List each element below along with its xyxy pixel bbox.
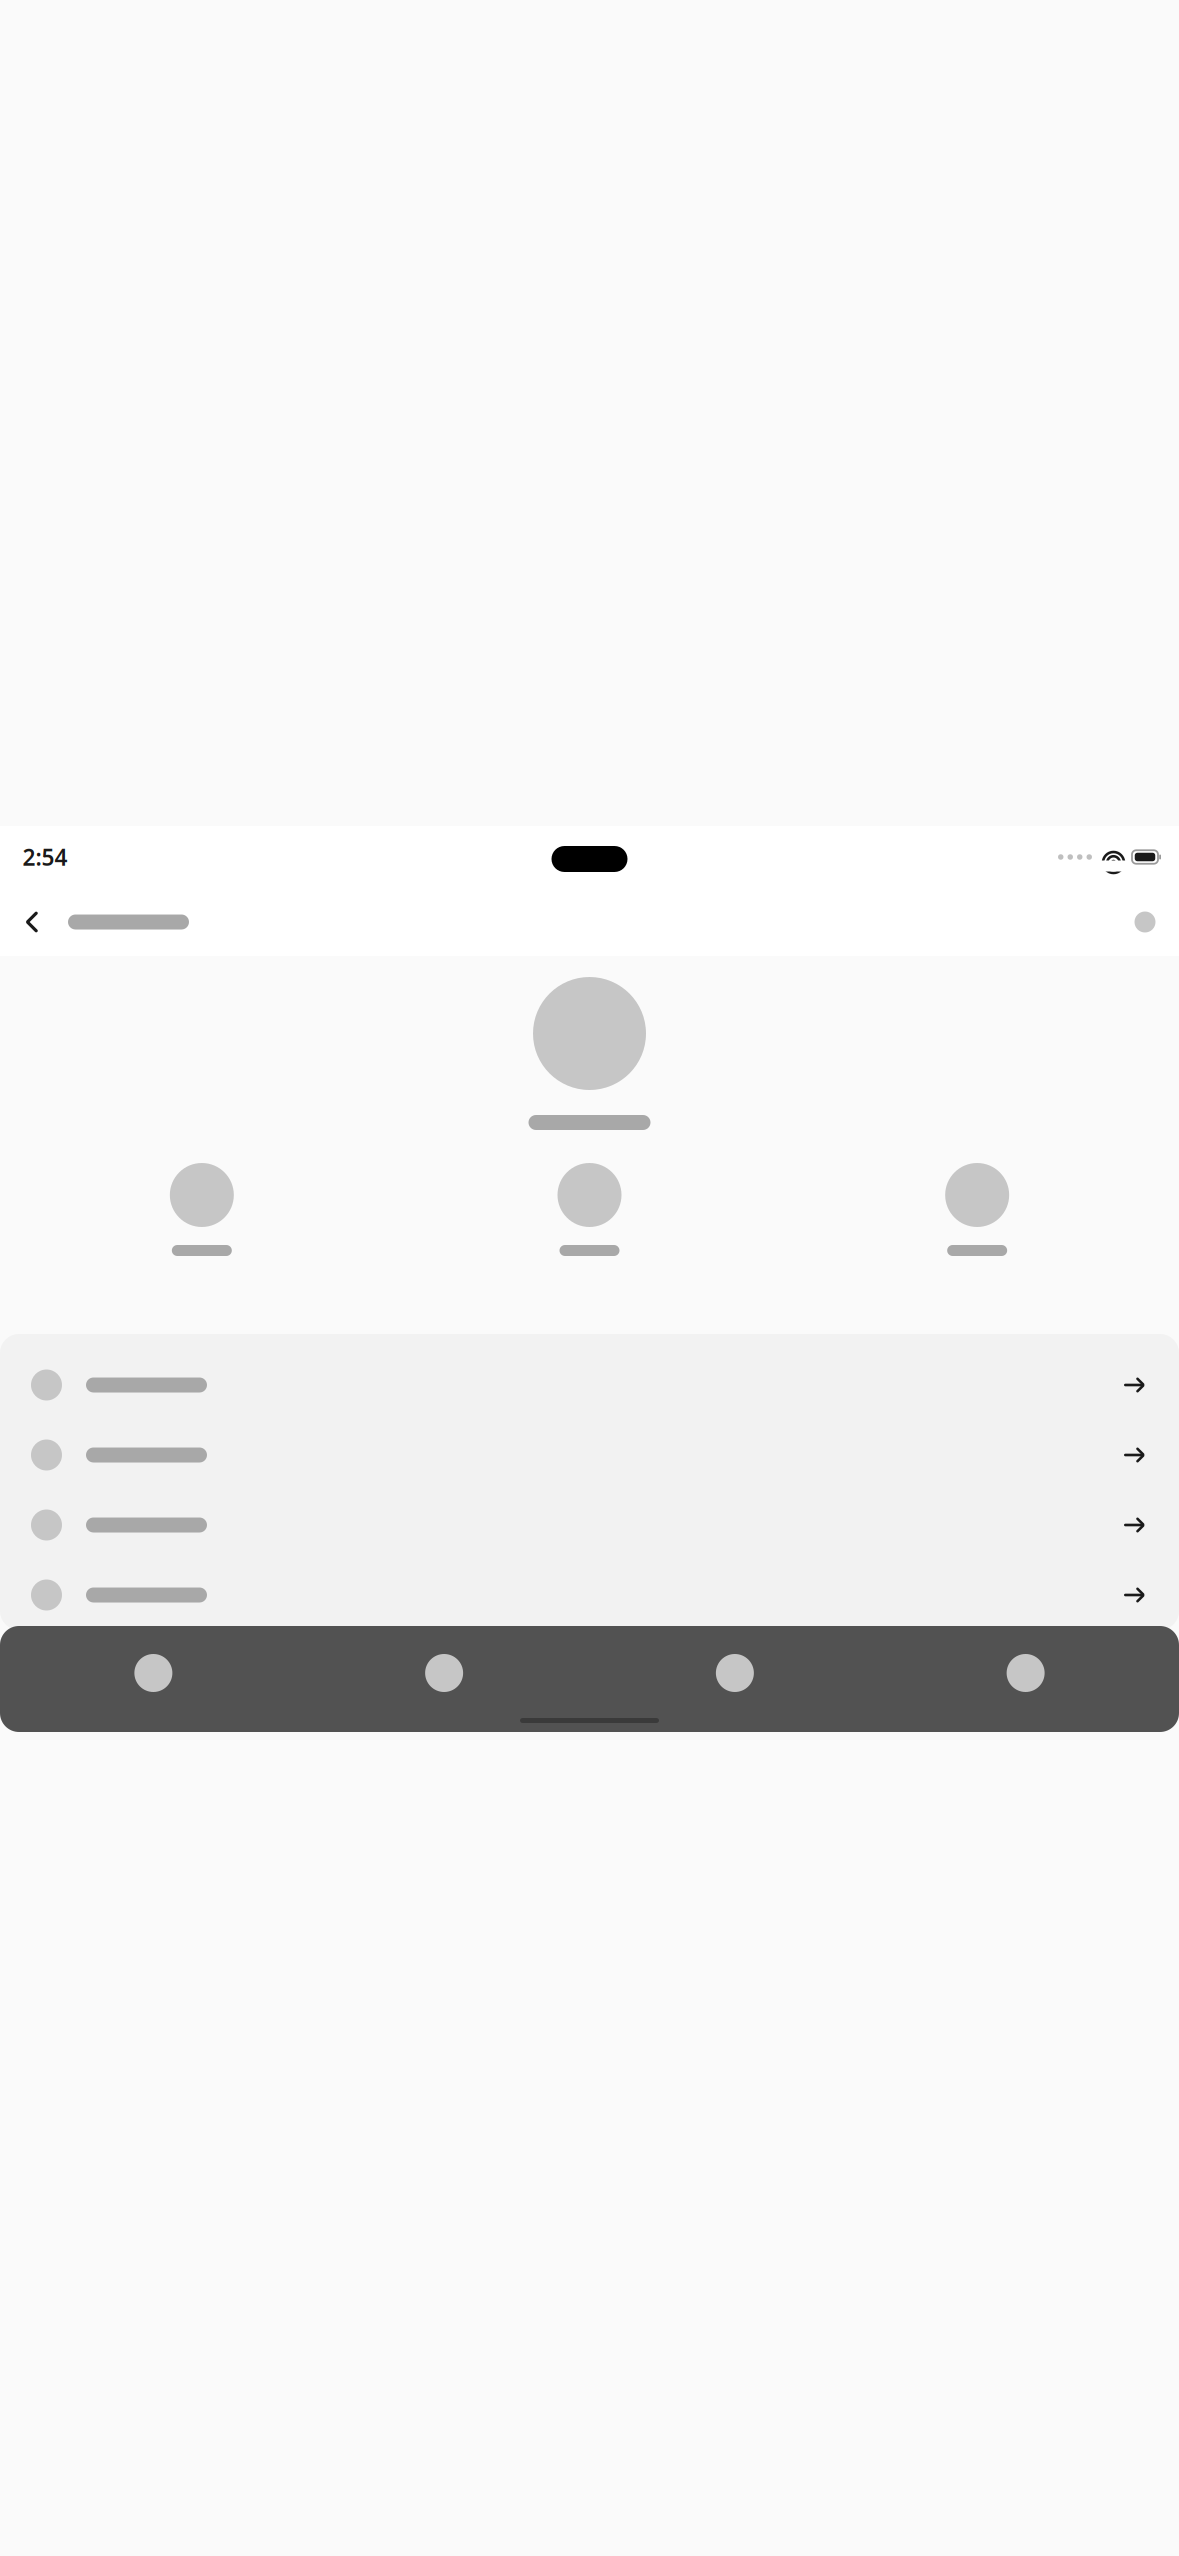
button[interactable]: Quick action <box>8 1163 396 1256</box>
staticText: 2:54 <box>22 842 67 872</box>
button[interactable]: Quick action <box>783 1163 1171 1256</box>
button[interactable]: Profile <box>1119 896 1171 948</box>
button[interactable]: Back <box>6 896 58 948</box>
button[interactable]: Tab <box>589 1646 880 1700</box>
button[interactable]: Tab <box>299 1646 590 1700</box>
button[interactable]: List item <box>0 1350 1179 1420</box>
button[interactable]: Tab <box>880 1646 1171 1700</box>
button[interactable]: List item <box>0 1420 1179 1490</box>
button[interactable]: Quick action <box>396 1163 783 1256</box>
button[interactable]: Tab <box>8 1646 299 1700</box>
button[interactable]: List item <box>0 1490 1179 1560</box>
button[interactable]: List item <box>0 1560 1179 1630</box>
